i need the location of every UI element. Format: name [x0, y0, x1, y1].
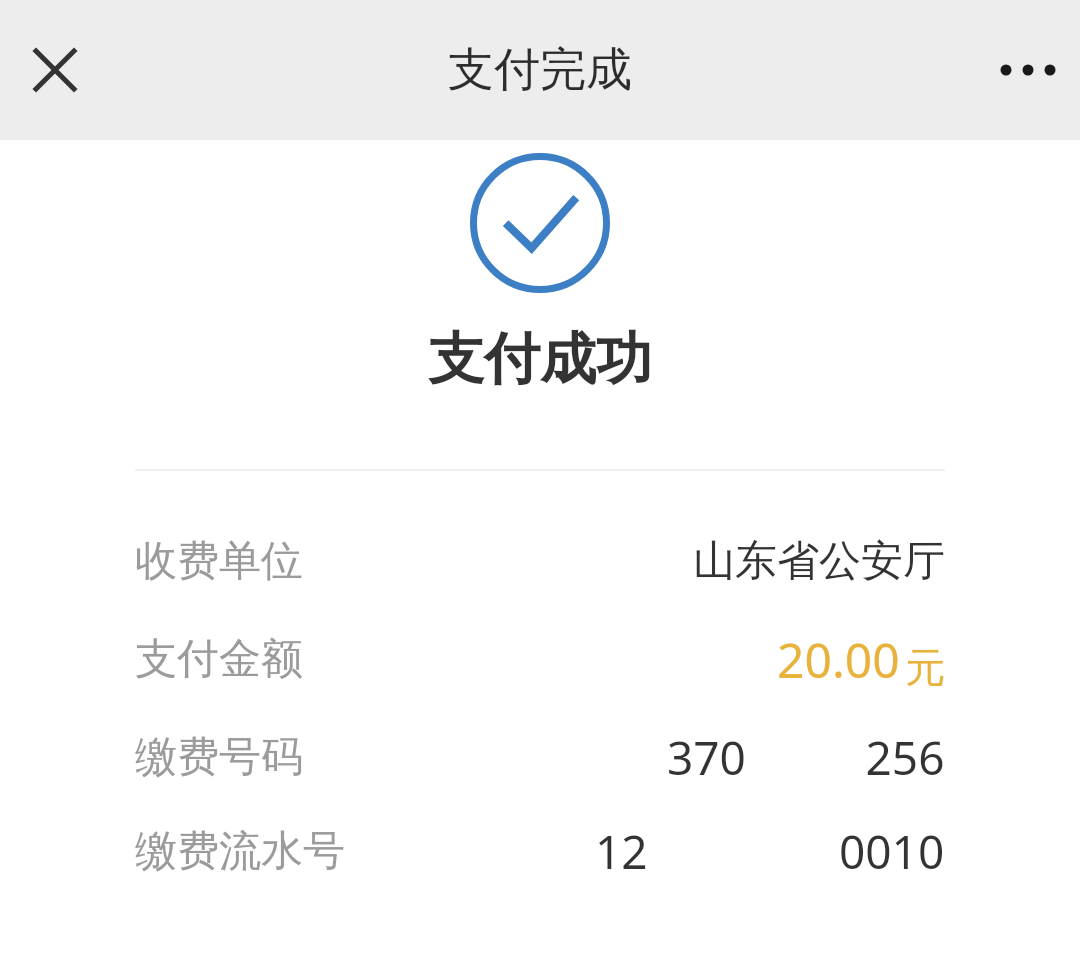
button[interactable]: 收费单位 — [0, 517, 1080, 605]
staticText: 缴费号码 — [135, 731, 303, 784]
other: Payment successful — [470, 153, 610, 293]
staticText: 收费单位 — [135, 535, 303, 588]
staticText: 20.00 — [777, 627, 900, 692]
staticText: 支付金额 — [135, 633, 303, 686]
button[interactable]: Close — [7, 22, 103, 118]
staticText: 12 0010 — [595, 820, 945, 883]
staticText: 支付完成 — [448, 41, 632, 99]
button[interactable]: 缴费号码 — [0, 713, 1080, 801]
button[interactable]: 缴费流水号 — [0, 807, 1080, 895]
button[interactable]: More options — [980, 22, 1076, 118]
staticText: 缴费流水号 — [135, 825, 345, 878]
staticText: 山东省公安厅 — [693, 535, 945, 588]
staticText: 370 256 — [667, 726, 945, 789]
staticText: 元 — [905, 642, 945, 692]
button[interactable]: 支付金额 — [0, 615, 1080, 703]
staticText: 支付成功 — [428, 324, 652, 395]
